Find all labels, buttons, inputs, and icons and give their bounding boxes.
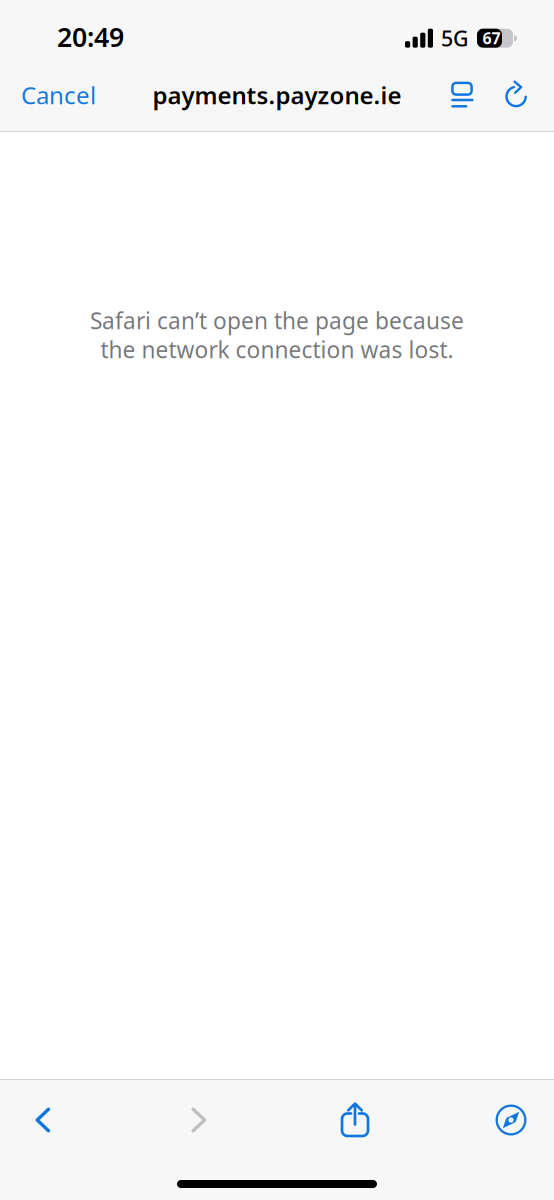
button[interactable]: Page Settings — [437, 70, 490, 119]
button[interactable]: Reload — [490, 71, 554, 119]
staticText: 67 — [482, 27, 500, 49]
staticText: payments.payzone.ie — [152, 79, 401, 111]
button[interactable]: Forward — [158, 1095, 240, 1145]
button[interactable]: Open in Safari — [470, 1095, 552, 1145]
button[interactable]: Back — [2, 1095, 84, 1145]
staticText: the network connection was lost. — [100, 334, 453, 364]
staticText: 5G — [441, 24, 469, 52]
staticText: Safari can’t open the page because — [90, 305, 464, 335]
button[interactable]: Share — [314, 1095, 396, 1145]
staticText: 20:49 — [57, 19, 124, 54]
button[interactable]: Cancel — [0, 63, 112, 127]
staticText: Cancel — [21, 79, 96, 111]
